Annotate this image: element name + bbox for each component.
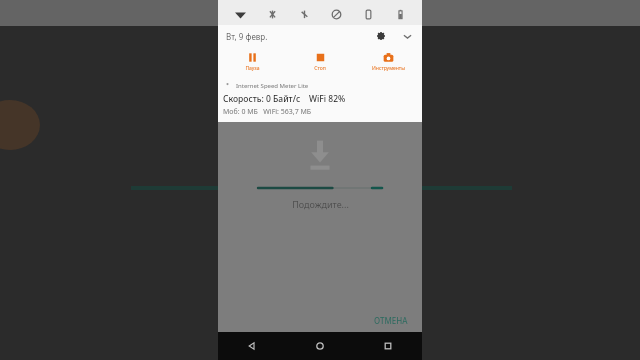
staticText: Моб: 0 МБ WiFi: 563,7 МБ (223, 107, 312, 117)
button[interactable]: Пауза (218, 47, 286, 77)
staticText: Internet Speed Meter Lite (236, 82, 309, 90)
staticText: Пауза (245, 65, 260, 72)
button[interactable]: Стоп (286, 47, 354, 77)
staticText: ОТМЕНА (374, 315, 408, 326)
button[interactable]: Battery (384, 3, 416, 25)
button[interactable]: Internet Speed Meter Lite (218, 77, 422, 122)
button[interactable]: Инструменты (354, 47, 422, 77)
button[interactable]: Auto rotate (352, 3, 384, 25)
button[interactable]: Back (218, 332, 286, 360)
staticText: Инструменты (372, 65, 405, 72)
button[interactable]: Home (286, 332, 354, 360)
staticText: Скорость: 0 Байт/с WiFi 82% (223, 93, 346, 105)
button[interactable]: ОТМЕНА (368, 311, 414, 330)
button[interactable]: Location off (288, 3, 320, 25)
button[interactable]: Settings (372, 27, 390, 45)
button[interactable]: Wi-Fi (224, 3, 256, 25)
button[interactable]: Do not disturb (320, 3, 352, 25)
staticText: Подождите... (292, 198, 349, 210)
button[interactable]: Expand (398, 27, 416, 45)
staticText: Стоп (314, 65, 326, 72)
staticText: Вт, 9 февр. (226, 31, 268, 42)
button[interactable]: Bluetooth off (256, 3, 288, 25)
button[interactable]: Recents (354, 332, 422, 360)
